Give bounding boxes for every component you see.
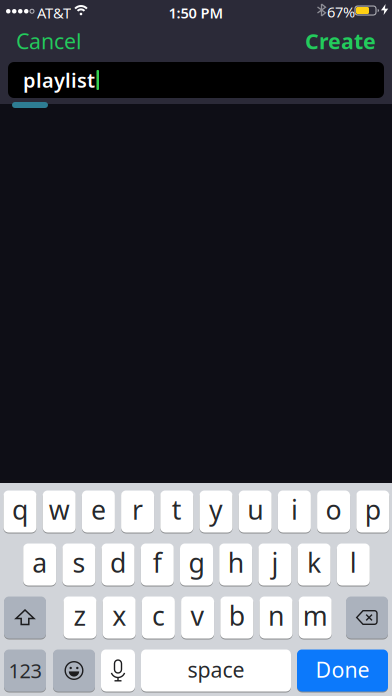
staticText: Cancel — [16, 27, 82, 55]
staticText: w — [49, 492, 70, 527]
staticText: x — [112, 598, 126, 633]
button[interactable]: Playlist name — [8, 62, 384, 98]
staticText: c — [152, 598, 165, 633]
staticText: playlist — [23, 67, 95, 93]
button[interactable]: l — [337, 543, 370, 586]
staticText: space — [187, 655, 244, 684]
button[interactable]: j — [258, 543, 291, 586]
button[interactable]: Emoji — [53, 649, 95, 692]
button[interactable]: i — [278, 490, 311, 533]
staticText: e — [91, 492, 106, 527]
button[interactable]: w — [43, 490, 76, 533]
staticText: 1:50 PM — [168, 3, 223, 22]
button[interactable]: Dictate — [101, 649, 135, 692]
button[interactable]: f — [141, 543, 174, 586]
button[interactable]: p — [356, 490, 389, 533]
button[interactable]: a — [23, 543, 56, 586]
staticText: r — [132, 492, 143, 527]
button[interactable]: b — [220, 596, 253, 639]
button[interactable]: m — [299, 596, 332, 639]
button[interactable]: space — [141, 649, 291, 692]
staticText: s — [72, 545, 85, 580]
staticText: p — [365, 492, 381, 527]
staticText: o — [326, 492, 342, 527]
button[interactable]: h — [219, 543, 252, 586]
button[interactable]: Create — [305, 27, 376, 55]
button[interactable]: c — [142, 596, 175, 639]
staticText: 67% — [327, 2, 355, 21]
staticText: n — [268, 598, 284, 633]
button[interactable]: o — [317, 490, 350, 533]
button[interactable]: Shift — [4, 596, 46, 639]
button[interactable]: d — [102, 543, 135, 586]
staticText: i — [291, 492, 298, 527]
button[interactable]: g — [180, 543, 213, 586]
button[interactable]: v — [181, 596, 214, 639]
button[interactable]: y — [199, 490, 232, 533]
button[interactable]: u — [239, 490, 272, 533]
staticText: m — [303, 598, 328, 633]
staticText: g — [188, 545, 204, 580]
button[interactable]: t — [160, 490, 193, 533]
staticText: z — [73, 598, 86, 633]
button[interactable]: n — [259, 596, 292, 639]
staticText: v — [191, 598, 205, 633]
staticText: a — [32, 545, 47, 580]
staticText: b — [229, 598, 245, 633]
button[interactable]: q — [3, 490, 36, 533]
staticText: t — [172, 492, 182, 527]
button[interactable]: z — [63, 596, 96, 639]
button[interactable]: Delete — [346, 596, 388, 639]
staticText: 123 — [8, 657, 41, 684]
button[interactable]: k — [298, 543, 331, 586]
staticText: j — [271, 545, 278, 580]
staticText: AT&T — [37, 3, 71, 22]
button[interactable]: x — [103, 596, 136, 639]
staticText: u — [247, 492, 263, 527]
staticText: d — [110, 545, 126, 580]
button[interactable]: e — [82, 490, 115, 533]
button[interactable]: Numbers — [4, 649, 46, 692]
button[interactable]: Cancel — [16, 27, 82, 55]
staticText: Done — [315, 655, 369, 684]
staticText: l — [350, 545, 357, 580]
button[interactable]: s — [62, 543, 95, 586]
staticText: k — [307, 545, 321, 580]
staticText: f — [153, 545, 162, 580]
staticText: q — [12, 492, 28, 527]
button[interactable]: r — [121, 490, 154, 533]
staticText: y — [209, 492, 223, 527]
staticText: Create — [305, 27, 376, 55]
staticText: h — [228, 545, 244, 580]
button[interactable]: Done — [297, 649, 388, 692]
